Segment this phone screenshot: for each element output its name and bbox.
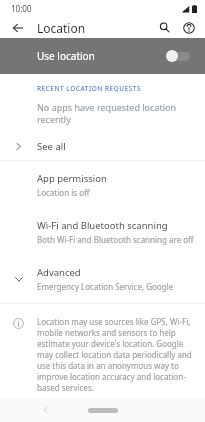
staticText: RECENT LOCATION REQUESTS — [37, 84, 142, 93]
staticText: Location is off — [37, 187, 90, 198]
staticText: Location may use sources like GPS, Wi-Fi… — [37, 316, 195, 393]
button[interactable]: Search — [152, 17, 176, 38]
staticText: Location — [37, 20, 86, 36]
staticText: Both Wi-Fi and Bluetooth scanning are of… — [37, 234, 194, 245]
button[interactable]: Wi-Fi and Bluetooth scanning — [0, 208, 205, 255]
staticText: See all — [37, 140, 66, 153]
button[interactable]: Home — [88, 408, 118, 413]
button[interactable]: Use location — [0, 38, 205, 74]
button[interactable]: Back — [36, 400, 56, 420]
staticText: Advanced — [37, 266, 81, 279]
staticText: No apps have requested location recently — [37, 101, 199, 125]
button[interactable]: Help — [177, 17, 201, 38]
button[interactable]: Advanced — [0, 255, 205, 303]
button[interactable]: See all — [0, 135, 205, 157]
staticText: Wi-Fi and Bluetooth scanning — [37, 219, 168, 232]
staticText: Emergency Location Service, Google Locat… — [37, 281, 197, 292]
staticText: Use location — [37, 49, 166, 63]
staticText: App permission — [37, 172, 107, 185]
button[interactable]: App permission — [0, 161, 205, 208]
button[interactable]: Back — [6, 17, 30, 38]
staticText: 10:00 — [11, 3, 32, 14]
